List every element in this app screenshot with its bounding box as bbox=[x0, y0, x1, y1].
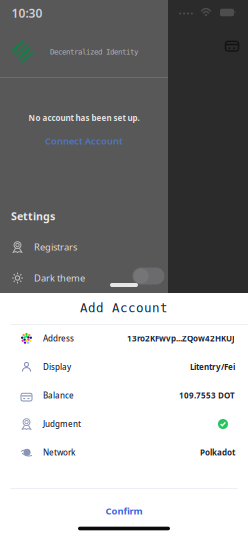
staticText: 109.7553 DOT bbox=[179, 390, 235, 401]
staticText: Balance bbox=[43, 390, 74, 401]
staticText: Network bbox=[43, 447, 75, 458]
staticText: No account has been set up. bbox=[28, 113, 139, 123]
button[interactable]: Network bbox=[0, 438, 248, 467]
button[interactable]: Registrars bbox=[12, 235, 166, 259]
button[interactable]: Judgment bbox=[0, 410, 248, 438]
button[interactable]: Display bbox=[0, 353, 248, 381]
button[interactable]: Balance bbox=[0, 381, 248, 410]
staticText: 13ro2KFwvp...ZQow42HKUJ bbox=[127, 333, 235, 344]
button[interactable]: Address bbox=[0, 324, 248, 353]
button[interactable]: Cards bbox=[220, 34, 244, 58]
staticText: Address bbox=[43, 333, 74, 344]
button[interactable]: Dark theme bbox=[12, 266, 166, 290]
staticText: Decentralized Identity bbox=[50, 48, 138, 56]
staticText: Litentry/Fei bbox=[190, 362, 235, 372]
button[interactable]: Connect Account bbox=[2, 134, 166, 147]
staticText: Connect Account bbox=[45, 135, 123, 147]
staticText: Settings bbox=[11, 209, 55, 223]
button[interactable]: Confirm bbox=[74, 503, 174, 519]
staticText: Confirm bbox=[105, 505, 142, 517]
staticText: Polkadot bbox=[200, 447, 235, 458]
staticText: Dark theme bbox=[34, 272, 85, 284]
staticText: Add Account bbox=[80, 301, 168, 315]
staticText: Judgment bbox=[43, 419, 81, 429]
staticText: 10:30 bbox=[11, 5, 42, 21]
staticText: Registrars bbox=[34, 241, 77, 253]
staticText: Display bbox=[43, 362, 71, 372]
